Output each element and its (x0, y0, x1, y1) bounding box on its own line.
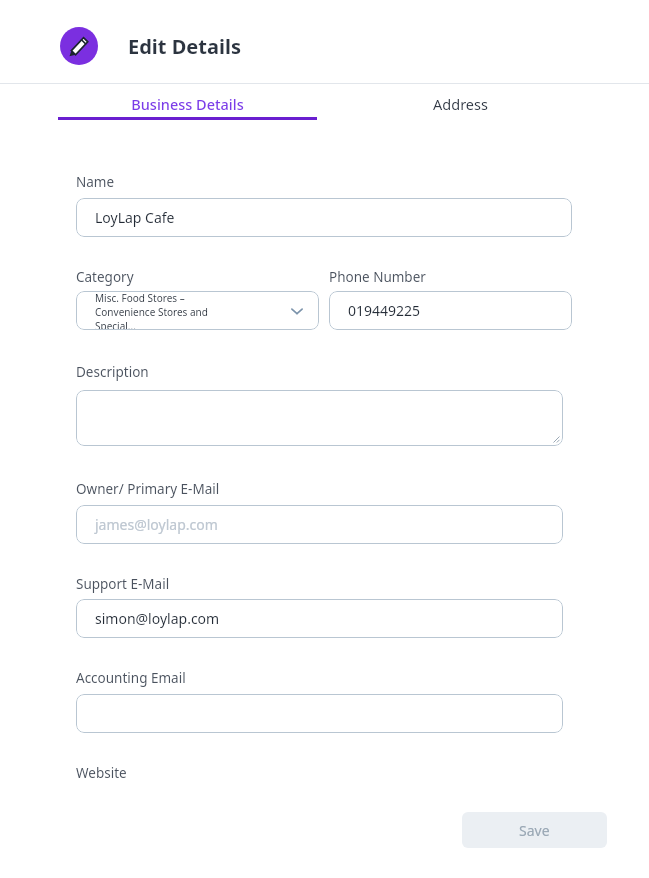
button[interactable]: Description (76, 390, 563, 446)
staticText: Support E-Mail (76, 575, 170, 593)
button[interactable] (76, 694, 563, 733)
button[interactable]: LoyLap Cafe (76, 198, 572, 237)
staticText: Misc. Food Stores – (95, 291, 185, 305)
staticText: Description (76, 363, 149, 381)
staticText: Website (76, 764, 127, 782)
staticText: Owner/ Primary E-Mail (76, 480, 220, 498)
button[interactable]: james@loylap.com (76, 505, 563, 544)
button[interactable]: 019449225 (329, 291, 572, 330)
staticText: LoyLap Cafe (95, 208, 175, 227)
button[interactable]: Business Details (58, 88, 317, 120)
staticText: Business Details (131, 94, 244, 114)
staticText: Save (519, 821, 550, 840)
staticText: Address (433, 94, 488, 114)
button[interactable]: Edit (60, 27, 98, 65)
staticText: Name (76, 173, 115, 191)
button[interactable]: simon@loylap.com (76, 599, 563, 638)
staticText: Convenience Stores and (95, 305, 208, 319)
staticText: Phone Number (329, 268, 426, 286)
staticText: Special... (95, 319, 136, 330)
button[interactable]: Save (462, 812, 607, 848)
staticText: Category (76, 268, 134, 286)
button[interactable]: Category dropdown (76, 291, 319, 330)
staticText: Edit Details (128, 33, 241, 60)
staticText: james@loylap.com (95, 515, 218, 534)
button[interactable]: Address (330, 88, 590, 120)
staticText: 019449225 (348, 301, 421, 320)
staticText: simon@loylap.com (95, 609, 220, 628)
staticText: Accounting Email (76, 669, 186, 687)
